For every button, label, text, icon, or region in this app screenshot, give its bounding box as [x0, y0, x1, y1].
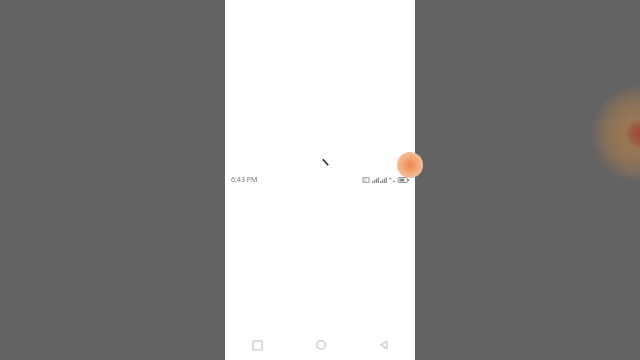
staticText: 6:43 PM — [231, 175, 258, 185]
button[interactable]: Recent apps — [225, 330, 289, 360]
button[interactable]: Accent action — [397, 152, 423, 178]
button[interactable]: Back — [352, 330, 415, 360]
button[interactable]: Home — [289, 330, 352, 360]
